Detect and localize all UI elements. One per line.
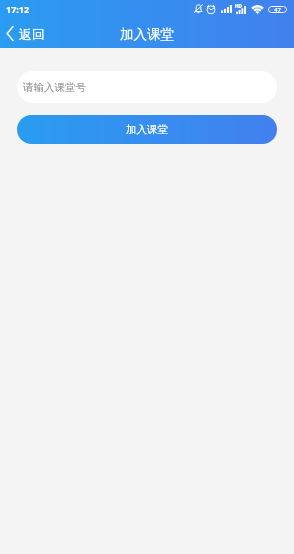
button[interactable]: 返回	[0, 19, 51, 48]
staticText: 返回	[19, 26, 45, 42]
staticText: 17:12	[6, 3, 30, 15]
button[interactable]: 请输入课堂号	[17, 71, 277, 103]
staticText: HD	[235, 3, 242, 9]
staticText: 加入课堂	[120, 26, 174, 43]
staticText: 47	[274, 6, 281, 13]
staticText: 加入课堂	[126, 123, 168, 136]
staticText: 请输入课堂号	[23, 81, 86, 94]
button[interactable]: 加入课堂	[17, 115, 277, 144]
